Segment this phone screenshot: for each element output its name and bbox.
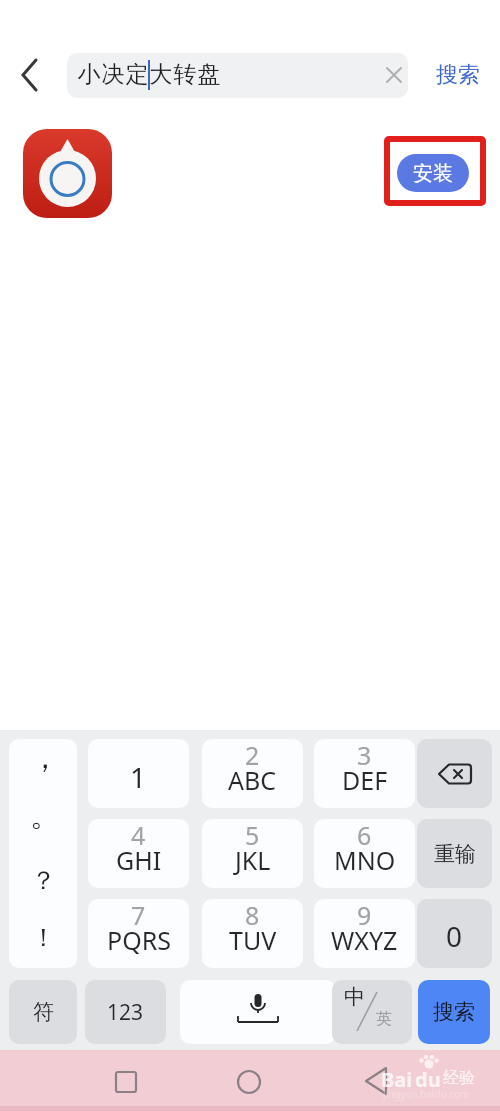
staticText: 。 [30,797,60,835]
staticText: GHI [116,843,162,877]
staticText: 4 [131,819,146,852]
staticText: 重输 [434,841,476,867]
button[interactable]: 2 [202,739,303,808]
staticText: ABC [228,763,277,797]
staticText: 7 [131,899,146,932]
staticText: ！ [31,922,56,953]
button[interactable]: 3 [314,739,415,808]
staticText: 3 [357,739,372,772]
button[interactable] [236,1069,262,1095]
button[interactable] [180,980,336,1044]
button[interactable]: 8 [202,899,303,968]
staticText: 搜索 [433,999,475,1025]
button[interactable] [417,739,492,808]
button[interactable]: 9 [314,899,415,968]
button[interactable]: 1 [88,739,189,808]
staticText: ， [30,739,60,777]
staticText: WXYZ [331,923,398,957]
staticText: Bai [381,1066,413,1093]
staticText: 符 [33,999,54,1025]
button[interactable] [362,1066,390,1096]
button[interactable]: 重输 [417,819,492,888]
staticText: DEF [342,763,388,797]
staticText: 9 [357,899,372,932]
staticText: 1 [130,758,147,796]
button[interactable]: 小决定大转盘 [67,53,408,98]
staticText: du [415,1066,441,1093]
button[interactable]: 安装 [397,154,469,192]
staticText: 搜索 [436,61,480,89]
staticText: 123 [107,998,144,1027]
staticText: PQRS [107,923,171,957]
staticText: 安装 [413,161,453,186]
button[interactable]: 123 [85,980,166,1044]
button[interactable]: 4 [88,819,189,888]
button[interactable] [385,66,403,84]
staticText: 2 [245,739,260,772]
staticText: 中 [344,984,365,1010]
button[interactable]: 中 [332,980,412,1044]
button[interactable] [23,129,112,218]
button[interactable]: 0 [417,899,492,968]
staticText: TUV [229,923,277,957]
button[interactable]: ， [9,739,77,968]
staticText: 5 [245,819,260,852]
button[interactable]: 6 [314,819,415,888]
staticText: 英 [376,1009,392,1029]
button[interactable] [114,1070,138,1094]
button[interactable]: 符 [9,980,77,1044]
staticText: JKL [235,843,271,877]
staticText: ？ [31,865,56,896]
button[interactable]: 搜索 [428,55,488,95]
button[interactable]: 5 [202,819,303,888]
staticText: 8 [245,899,260,932]
staticText: 经验 [443,1068,475,1088]
staticText: jingyan.baidu.com [383,1087,470,1101]
staticText: 小决定大转盘 [77,60,221,89]
button[interactable]: 搜索 [418,980,490,1044]
staticText: MNO [334,843,396,877]
button[interactable]: 7 [88,899,189,968]
staticText: 0 [446,917,463,955]
button[interactable] [18,58,42,92]
staticText: 6 [357,819,372,852]
